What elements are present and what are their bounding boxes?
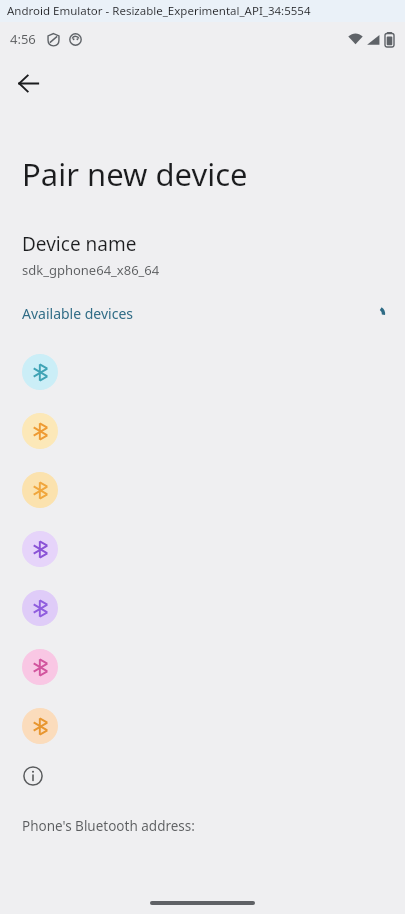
button[interactable]: Information bbox=[13, 756, 53, 796]
staticText: Device name bbox=[22, 231, 137, 257]
button[interactable] bbox=[0, 519, 405, 578]
button[interactable] bbox=[0, 401, 405, 460]
button[interactable] bbox=[0, 578, 405, 637]
staticText: Pair new device bbox=[22, 153, 248, 195]
staticText: Phone's Bluetooth address: bbox=[22, 817, 195, 835]
button[interactable] bbox=[0, 460, 405, 519]
button[interactable] bbox=[0, 342, 405, 401]
staticText: Available devices bbox=[22, 304, 134, 323]
button[interactable]: Device name bbox=[0, 231, 405, 279]
button[interactable]: Back bbox=[8, 63, 48, 103]
button[interactable] bbox=[0, 696, 405, 755]
staticText: Android Emulator - Resizable_Experimenta… bbox=[7, 3, 311, 19]
button[interactable] bbox=[0, 637, 405, 696]
staticText: sdk_gphone64_x86_64 bbox=[22, 261, 160, 279]
staticText: 4:56 bbox=[10, 30, 36, 48]
